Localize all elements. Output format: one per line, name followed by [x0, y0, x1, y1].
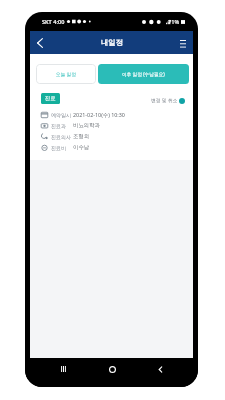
staticText: 71%	[168, 18, 180, 26]
button[interactable]: 오늘 일정	[36, 64, 96, 84]
button[interactable]: 진료	[41, 93, 60, 104]
staticText: 진료	[45, 95, 56, 102]
staticText: 변경 및 취소	[151, 97, 178, 104]
staticText: SKT 4:00	[42, 18, 65, 26]
staticText: 내일정	[101, 38, 123, 47]
staticText: 비뇨의학과	[73, 122, 100, 129]
button[interactable]: Back	[150, 359, 170, 379]
staticText: 진료과	[51, 123, 66, 129]
button[interactable]: Recent apps	[53, 359, 73, 379]
staticText: 이후 일정 (수납필요)	[122, 71, 165, 77]
staticText: 진료비	[51, 145, 66, 151]
button[interactable]: 변경 및 취소	[151, 97, 185, 104]
button[interactable]: 이후 일정 (수납필요)	[98, 64, 189, 84]
button[interactable]: Home	[102, 359, 122, 379]
button[interactable]: Back	[30, 32, 50, 54]
staticText: 조형외	[73, 133, 90, 140]
staticText: 이수남	[73, 144, 90, 151]
staticText: 예약일시	[51, 112, 71, 118]
button[interactable]: Menu	[173, 32, 193, 54]
staticText: 진료의사	[51, 134, 71, 140]
staticText: 오늘 일정	[56, 71, 76, 77]
staticText: 2021-02-10(수) 10:30	[73, 111, 125, 118]
